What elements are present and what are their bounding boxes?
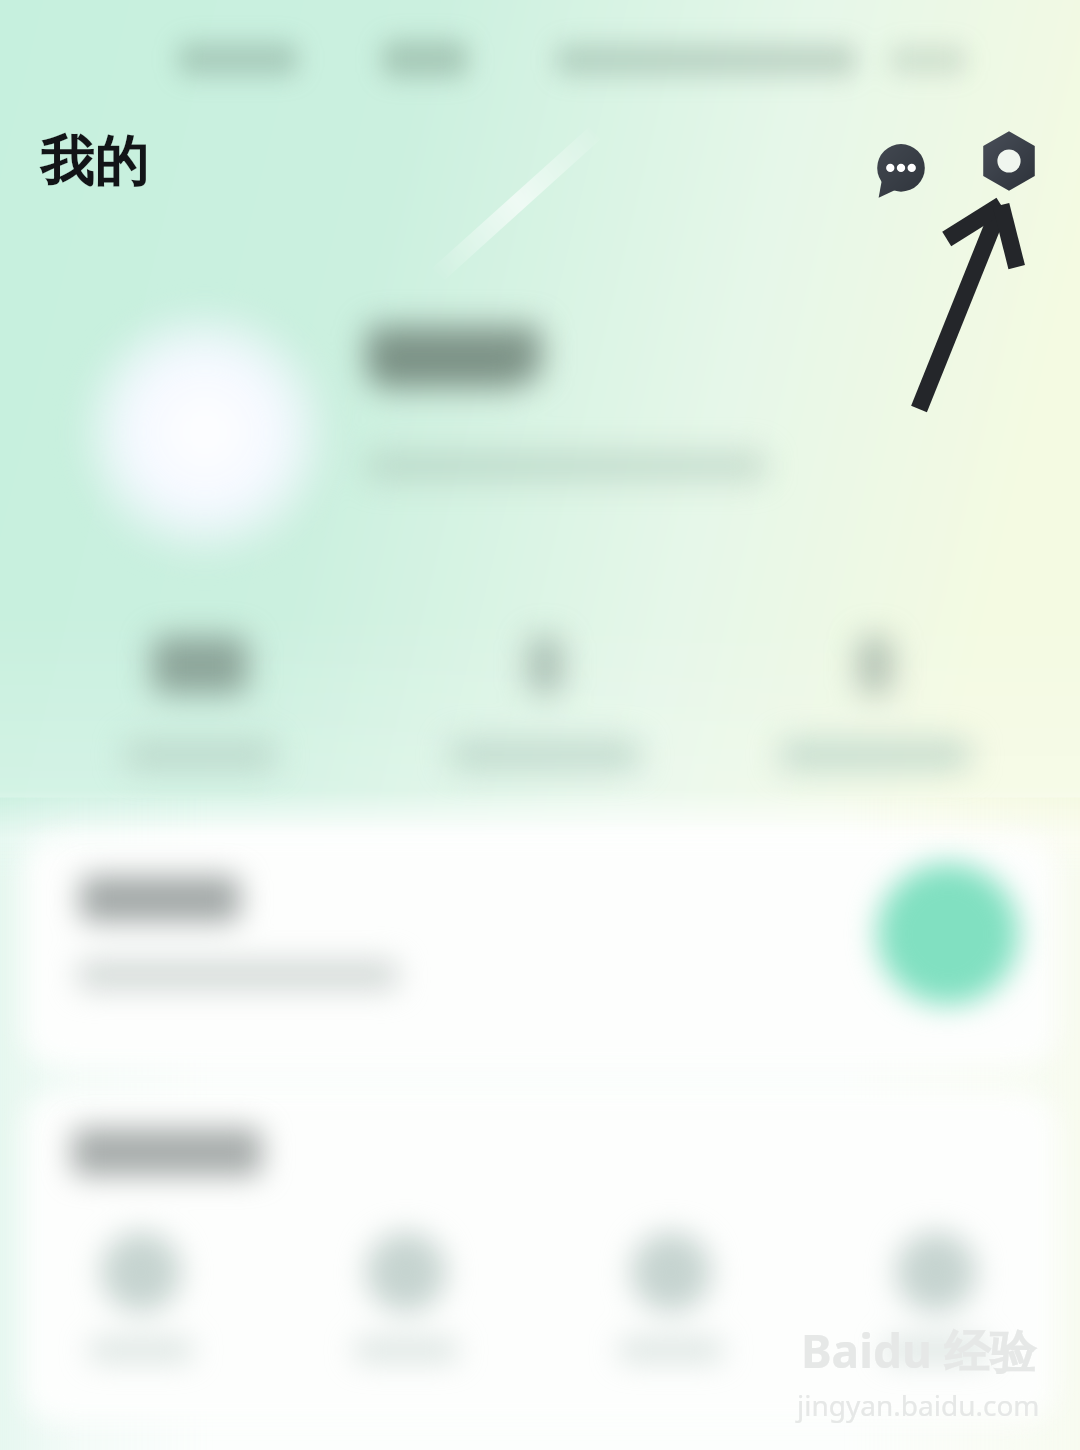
staticText: jingyan.baidu.com [797,1386,1040,1424]
button[interactable]: Settings [978,130,1040,192]
button[interactable]: 我的 [36,126,152,198]
staticText: Baidu 经验 [801,1319,1036,1382]
staticText: 我的 [40,128,148,196]
button[interactable]: Messages [862,132,940,210]
